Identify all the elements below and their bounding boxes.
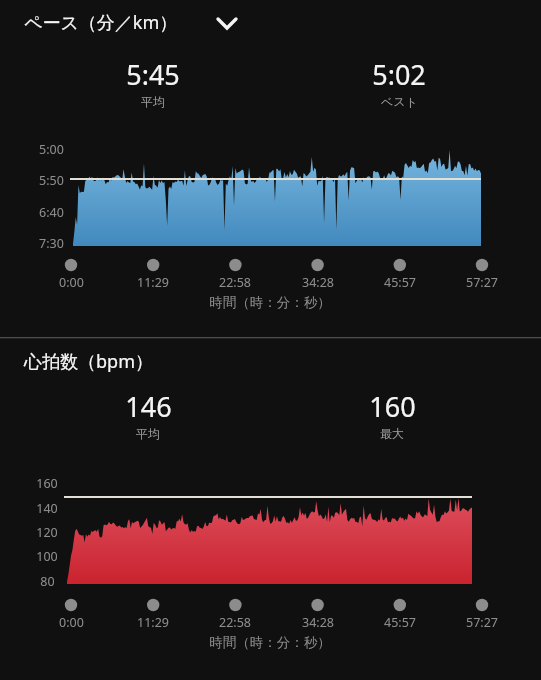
button[interactable]: Change metric xyxy=(207,6,247,38)
staticText: 11:29 xyxy=(137,274,169,291)
staticText: 120 xyxy=(36,524,58,541)
staticText: 22:58 xyxy=(219,614,251,631)
staticText: 22:58 xyxy=(219,274,251,291)
staticText: 0:00 xyxy=(59,274,84,291)
staticText: 34:28 xyxy=(302,614,334,631)
staticText: 時間（時：分：秒） xyxy=(209,634,331,651)
staticText: 5:45 xyxy=(126,56,180,93)
staticText: 0:00 xyxy=(59,614,84,631)
staticText: 45:57 xyxy=(384,274,416,291)
staticText: 平均 xyxy=(141,94,165,109)
staticText: 5:02 xyxy=(372,56,426,93)
staticText: 心拍数（bpm） xyxy=(24,349,153,374)
staticText: 57:27 xyxy=(466,274,498,291)
staticText: 160 xyxy=(369,388,416,425)
button[interactable]: 心拍数（bpm） xyxy=(18,344,218,378)
staticText: 11:29 xyxy=(137,614,169,631)
staticText: 時間（時：分：秒） xyxy=(209,294,331,311)
staticText: 5:00 xyxy=(39,141,64,158)
staticText: 6:40 xyxy=(39,204,64,221)
staticText: 最大 xyxy=(380,426,404,441)
staticText: 140 xyxy=(36,500,58,517)
staticText: 160 xyxy=(36,475,58,492)
staticText: 5:50 xyxy=(39,172,64,189)
staticText: 57:27 xyxy=(466,614,498,631)
staticText: ペース（分／km） xyxy=(24,10,178,35)
staticText: 45:57 xyxy=(384,614,416,631)
staticText: 7:30 xyxy=(39,235,64,252)
button[interactable]: ペース（分／km） xyxy=(18,4,218,40)
staticText: ベスト xyxy=(381,94,418,109)
staticText: 80 xyxy=(40,573,55,590)
staticText: 平均 xyxy=(136,426,160,441)
staticText: 146 xyxy=(125,388,172,425)
staticText: 34:28 xyxy=(302,274,334,291)
staticText: 100 xyxy=(36,548,58,565)
